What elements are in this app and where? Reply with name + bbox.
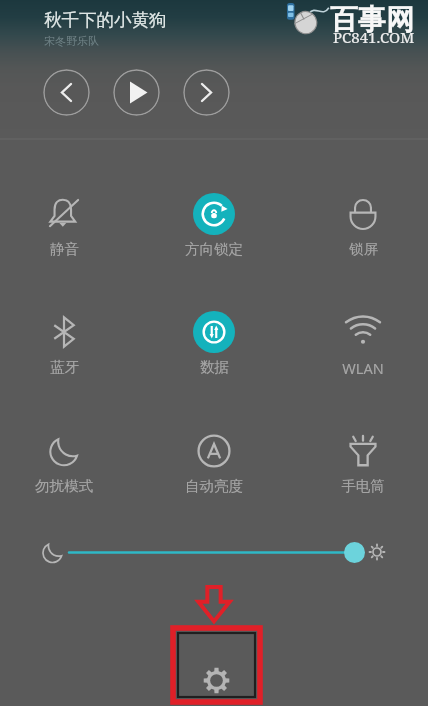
button[interactable]: Settings: [173, 628, 260, 702]
staticText: 锁屏: [349, 240, 378, 258]
button[interactable]: Next track: [183, 69, 230, 116]
button[interactable]: 数据: [164, 310, 264, 384]
button[interactable]: 静音: [14, 192, 114, 266]
staticText: 宋冬野乐队: [44, 34, 99, 48]
staticText: 秋千下的小黄狗: [44, 9, 167, 31]
staticText: 勿扰模式: [35, 477, 93, 495]
staticText: 蓝牙: [50, 358, 79, 376]
button[interactable]: Play: [113, 69, 160, 116]
staticText: 手电筒: [341, 477, 385, 495]
staticText: WLAN: [342, 358, 384, 378]
staticText: 方向锁定: [185, 240, 243, 258]
staticText: PC841.COM: [333, 27, 415, 47]
button[interactable]: 自动亮度: [164, 429, 264, 503]
staticText: 百事网: [330, 2, 414, 37]
button[interactable]: 蓝牙: [14, 310, 114, 384]
button[interactable]: 锁屏: [313, 192, 413, 266]
button[interactable]: WLAN: [313, 310, 413, 384]
button[interactable]: Previous track: [43, 69, 90, 116]
staticText: 自动亮度: [185, 477, 243, 495]
staticText: 静音: [50, 240, 79, 258]
button[interactable]: 勿扰模式: [14, 429, 114, 503]
button[interactable]: 手电筒: [313, 429, 413, 503]
staticText: 数据: [200, 358, 229, 376]
button[interactable]: 方向锁定: [164, 192, 264, 266]
